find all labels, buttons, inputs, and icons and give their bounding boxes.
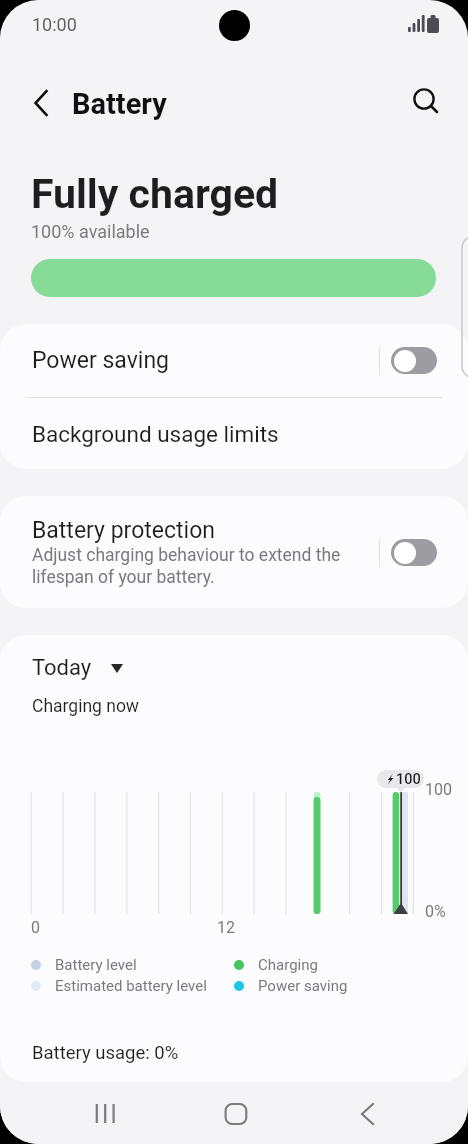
button[interactable]: Background usage limits xyxy=(0,398,468,469)
button[interactable]: Power saving xyxy=(0,324,468,397)
staticText: Power saving xyxy=(32,347,170,374)
staticText: Battery level xyxy=(55,956,137,974)
staticText: Estimated battery level xyxy=(55,977,207,995)
staticText: 0% xyxy=(425,902,446,921)
staticText: Adjust charging behaviour to extend the … xyxy=(32,545,354,588)
staticText: 100 xyxy=(425,780,452,799)
staticText: 10:00 xyxy=(32,14,77,35)
staticText: 100% available xyxy=(31,221,150,242)
button[interactable]: Power saving toggle, off xyxy=(391,347,437,374)
staticText: Battery usage: 0% xyxy=(32,1042,179,1064)
staticText: Battery protection xyxy=(32,517,215,544)
staticText: Background usage limits xyxy=(32,421,279,447)
staticText: Battery xyxy=(72,87,167,121)
staticText: Power saving xyxy=(258,977,348,995)
staticText: 100 xyxy=(396,771,421,788)
button[interactable]: Back xyxy=(337,1084,397,1144)
button[interactable]: Battery protection toggle, off xyxy=(391,539,437,566)
button[interactable]: Home xyxy=(206,1084,266,1144)
button[interactable]: Search xyxy=(403,79,451,127)
staticText: 0 xyxy=(31,918,40,937)
button[interactable]: Recents xyxy=(75,1084,135,1144)
staticText: Today xyxy=(32,655,92,681)
staticText: Charging xyxy=(258,956,318,974)
staticText: 12 xyxy=(217,918,235,937)
button[interactable] xyxy=(0,496,468,608)
button[interactable]: Today xyxy=(22,649,133,687)
staticText: Fully charged xyxy=(31,170,279,218)
button[interactable]: Navigate up xyxy=(20,81,64,125)
staticText: Charging now xyxy=(32,696,140,717)
